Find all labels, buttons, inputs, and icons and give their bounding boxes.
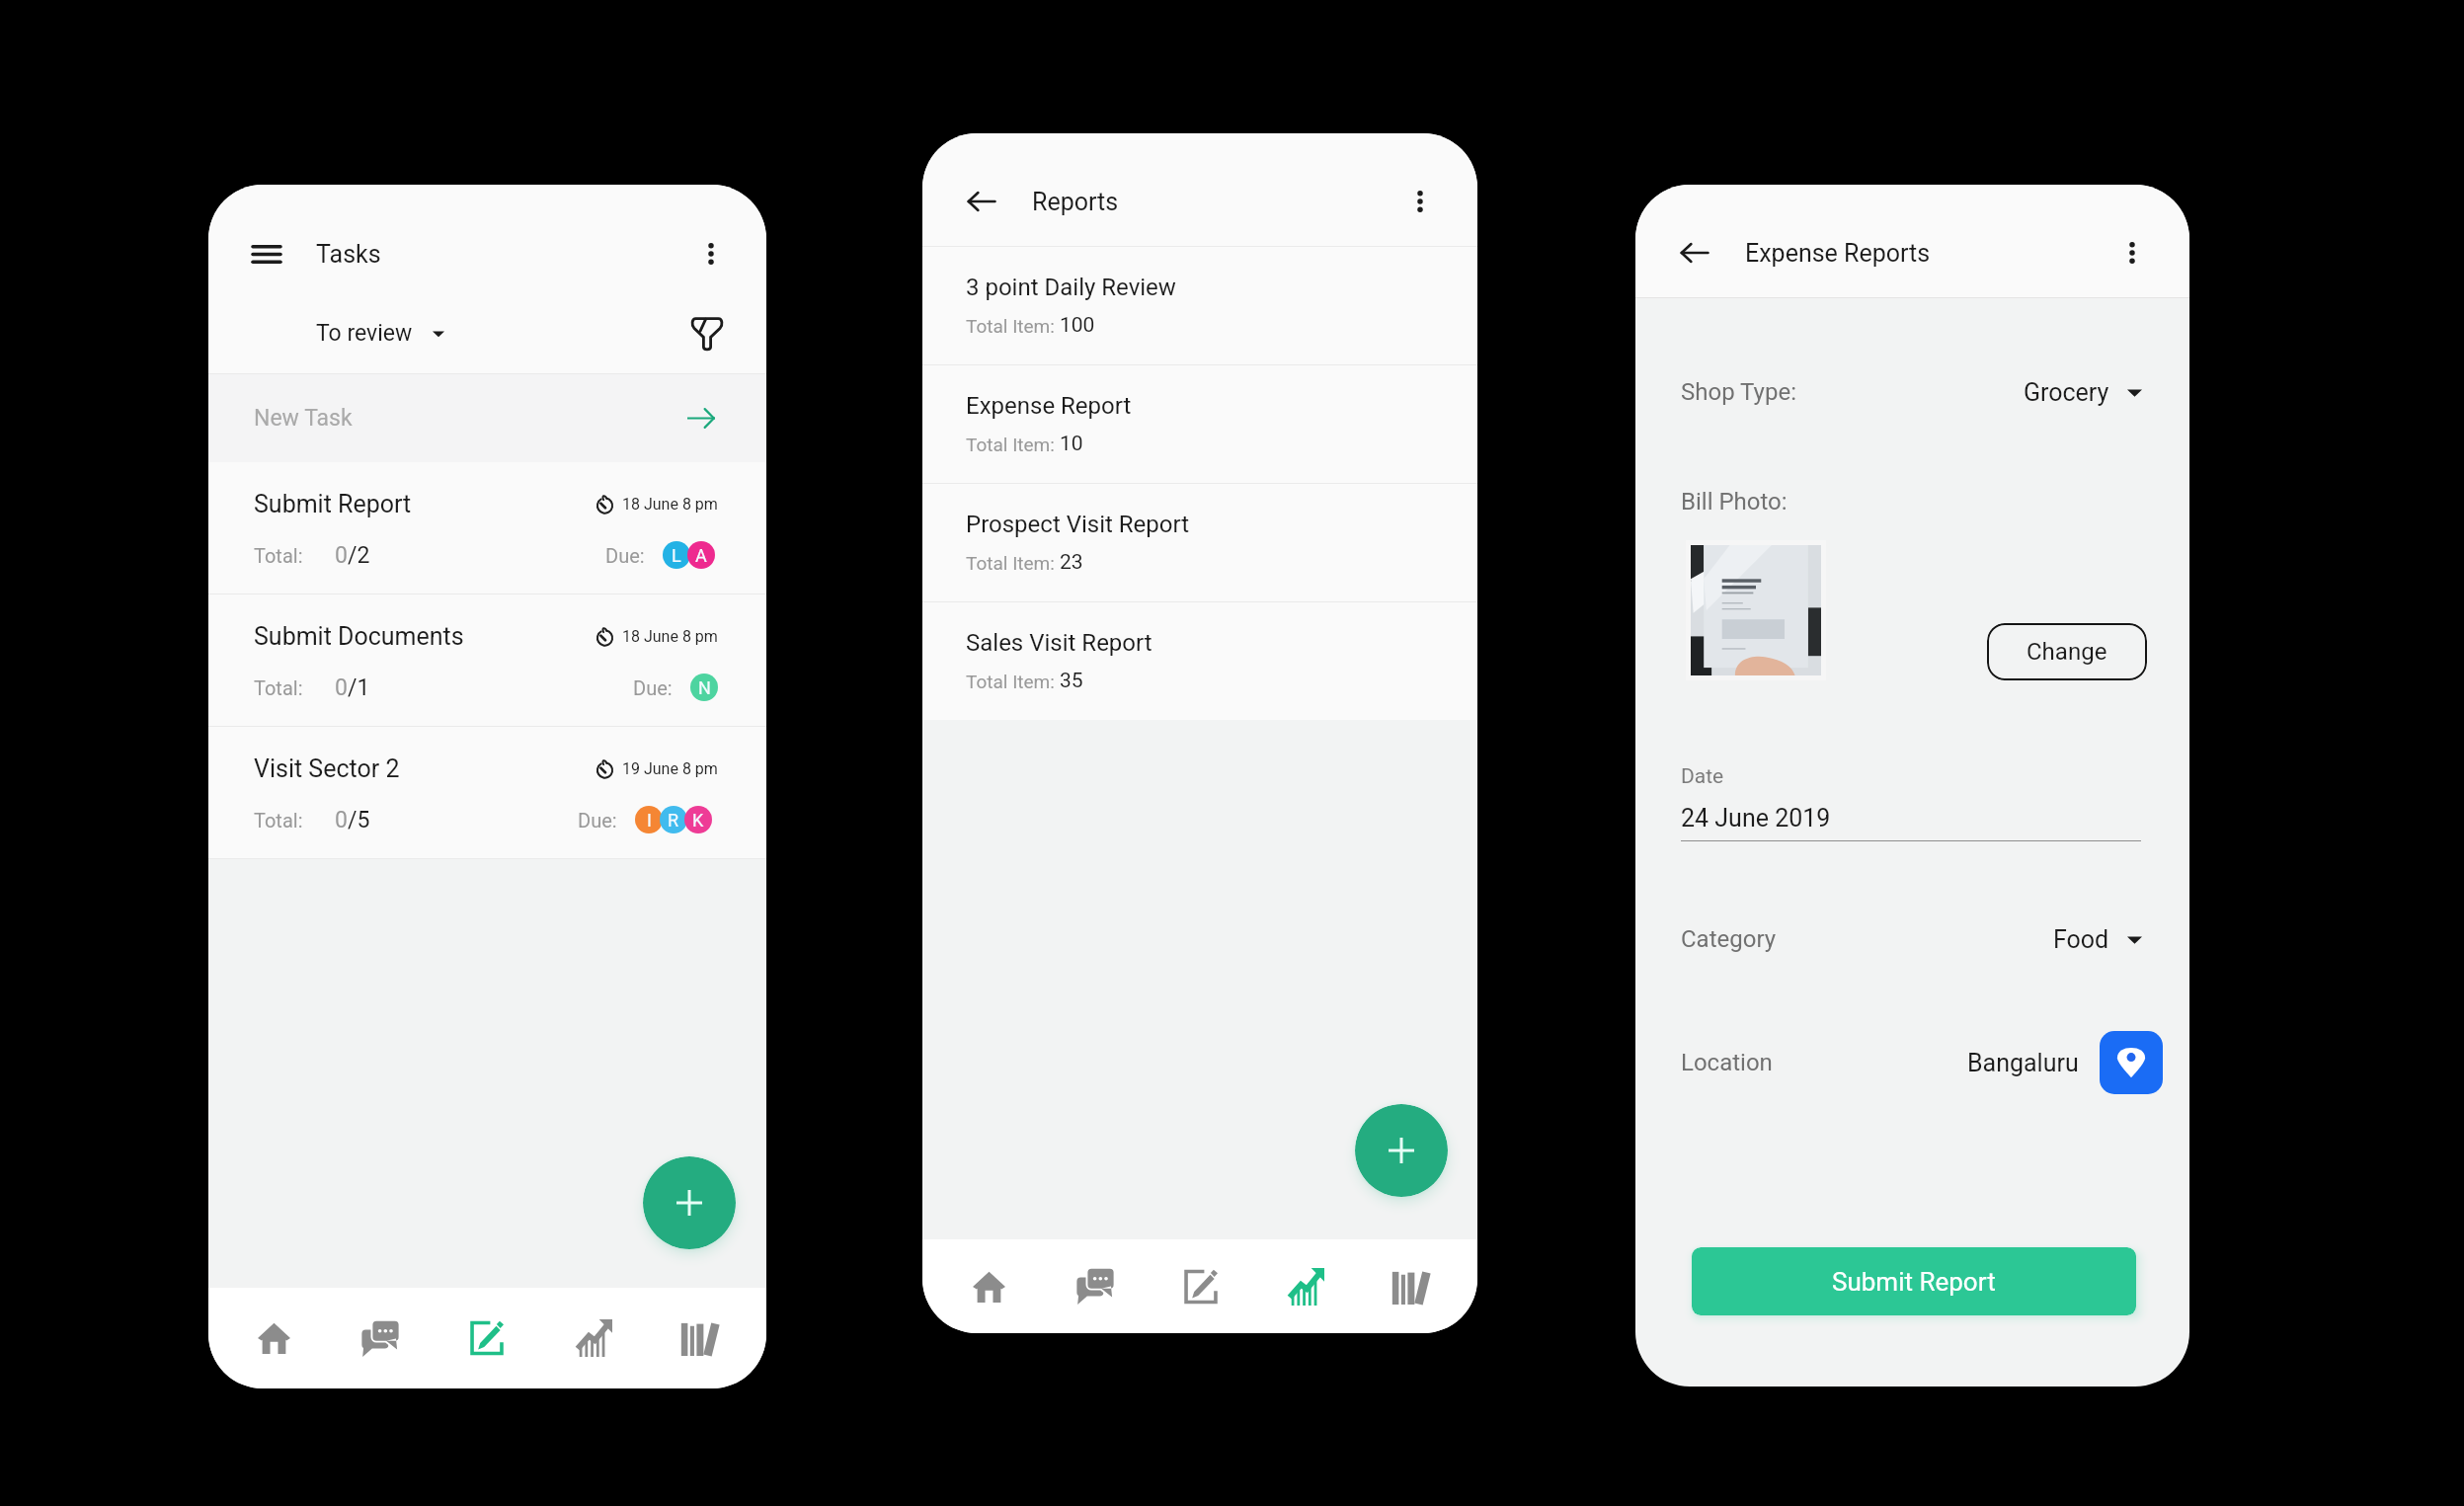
button[interactable]: Submit Report [208, 462, 766, 594]
staticText: Total Item: [966, 315, 1060, 337]
staticText: Grocery [2024, 378, 2109, 407]
staticText: Expense Report [966, 392, 1132, 420]
staticText: Total: [254, 544, 303, 567]
staticText: Change [2027, 638, 2107, 666]
button[interactable]: More options [2110, 231, 2154, 275]
button[interactable]: New Task [208, 374, 766, 462]
button[interactable]: Home [935, 1239, 1042, 1333]
staticText: Sales Visit Report [966, 629, 1153, 657]
button[interactable]: More options [1398, 180, 1442, 223]
button[interactable]: Reports [540, 1288, 647, 1388]
staticText: N [698, 677, 711, 698]
button[interactable]: Add [1355, 1104, 1448, 1197]
button[interactable]: Food [2053, 925, 2142, 954]
staticText: Category [1681, 925, 1777, 953]
button[interactable]: Add [643, 1156, 736, 1249]
button[interactable]: Filter [685, 311, 729, 355]
staticText: 23 [1060, 550, 1083, 575]
staticText: Tasks [316, 240, 381, 269]
staticText: Due: [633, 676, 673, 699]
button[interactable]: More options [689, 232, 733, 276]
button[interactable]: Expense Report [922, 365, 1477, 483]
button[interactable]: Reports [1253, 1239, 1359, 1333]
button[interactable]: Messages [327, 1288, 434, 1388]
staticText: I [647, 810, 652, 831]
staticText: 0 [335, 674, 348, 701]
staticText: Date [1681, 764, 1724, 789]
button[interactable]: Back [960, 180, 1003, 223]
button[interactable]: Change [1987, 623, 2147, 680]
staticText: Due: [605, 544, 645, 567]
button[interactable]: Prospect Visit Report [922, 484, 1477, 601]
staticText: Expense Reports [1745, 239, 1931, 268]
staticText: Submit Report [1832, 1267, 1996, 1297]
button[interactable]: Pick location [2100, 1031, 2163, 1094]
staticText: /5 [348, 807, 370, 833]
button[interactable]: Sales Visit Report [922, 602, 1477, 720]
button[interactable]: Visit Sector 2 [208, 727, 766, 858]
button[interactable]: Library [1359, 1239, 1465, 1333]
staticText: 18 June 8 pm [622, 495, 718, 514]
staticText: A [695, 545, 707, 566]
staticText: 0 [335, 542, 348, 569]
staticText: 24 June 2019 [1681, 804, 1831, 832]
staticText: New Task [254, 405, 353, 432]
button[interactable]: Messages [1042, 1239, 1148, 1333]
staticText: Location [1681, 1049, 1773, 1076]
staticText: /2 [348, 542, 370, 569]
staticText: Total Item: [966, 434, 1060, 455]
staticText: 0 [335, 807, 348, 833]
button[interactable]: Compose [1148, 1239, 1253, 1333]
staticText: Reports [1032, 188, 1119, 216]
button[interactable]: Grocery [2024, 378, 2142, 407]
button[interactable]: Menu [242, 229, 291, 278]
button[interactable]: Submit Documents [208, 594, 766, 726]
button[interactable]: Home [221, 1288, 327, 1388]
staticText: R [668, 810, 679, 831]
staticText: Bangaluru [1967, 1049, 2079, 1077]
staticText: Total Item: [966, 671, 1060, 692]
button[interactable]: To review [316, 312, 444, 355]
staticText: Total: [254, 809, 303, 832]
staticText: Total Item: [966, 552, 1060, 574]
staticText: 19 June 8 pm [622, 759, 718, 778]
staticText: Visit Sector 2 [254, 754, 400, 783]
staticText: Food [2053, 925, 2109, 954]
staticText: 3 point Daily Review [966, 274, 1176, 301]
button[interactable]: Compose [434, 1288, 540, 1388]
staticText: /1 [348, 674, 370, 701]
button[interactable]: Submit Report [1692, 1247, 2136, 1315]
button[interactable]: Back [1673, 231, 1716, 275]
staticText: Total: [254, 676, 303, 699]
staticText: To review [316, 320, 413, 347]
staticText: Submit Report [254, 490, 412, 518]
button[interactable]: Library [647, 1288, 754, 1388]
staticText: 18 June 8 pm [622, 627, 718, 646]
staticText: Submit Documents [254, 622, 464, 651]
staticText: 10 [1060, 432, 1083, 456]
staticText: Shop Type: [1681, 378, 1796, 406]
staticText: K [692, 810, 704, 831]
staticText: 35 [1060, 669, 1083, 693]
staticText: Bill Photo: [1681, 488, 1788, 515]
staticText: Due: [578, 809, 617, 832]
button[interactable]: 3 point Daily Review [922, 247, 1477, 364]
staticText: L [672, 545, 681, 566]
staticText: Prospect Visit Report [966, 511, 1190, 538]
staticText: 100 [1060, 313, 1095, 338]
